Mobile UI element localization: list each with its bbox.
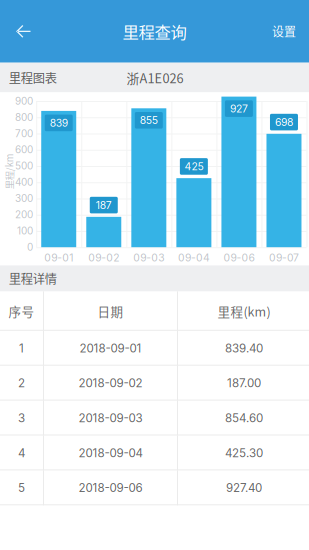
staticText: 5 <box>18 481 25 495</box>
staticText: 187 <box>96 199 112 211</box>
staticText: 里程(km) <box>217 302 270 320</box>
staticText: 600 <box>15 144 33 156</box>
staticText: 里程详情 <box>9 269 57 287</box>
staticText: 927 <box>230 102 248 115</box>
staticText: 2018-09-02 <box>78 376 142 390</box>
staticText: 里程/km <box>0 164 27 178</box>
staticText: 425 <box>184 160 203 173</box>
staticText: 698 <box>275 116 293 128</box>
staticText: 0 <box>27 241 33 253</box>
staticText: 里程查询 <box>122 19 186 43</box>
staticText: 09-02 <box>88 251 119 264</box>
staticText: 浙A1E026 <box>126 68 183 87</box>
staticText: 500 <box>15 160 33 172</box>
staticText: 09-04 <box>178 251 210 264</box>
staticText: 839.40 <box>225 341 263 355</box>
button[interactable]: 设置 <box>259 6 309 56</box>
staticText: 09-03 <box>133 251 164 264</box>
staticText: 700 <box>15 127 33 139</box>
staticText: 900 <box>15 95 33 107</box>
staticText: 300 <box>15 192 33 204</box>
staticText: 1 <box>19 341 24 355</box>
staticText: 839 <box>50 117 68 129</box>
staticText: 日期 <box>97 302 123 320</box>
staticText: 2018-09-04 <box>78 446 142 460</box>
staticText: 3 <box>18 411 25 425</box>
staticText: 100 <box>17 225 33 237</box>
staticText: 927.40 <box>226 481 262 495</box>
staticText: 09-01 <box>44 251 73 264</box>
staticText: 4 <box>18 446 25 460</box>
staticText: 2018-09-01 <box>79 341 141 355</box>
staticText: 200 <box>15 209 33 221</box>
staticText: 里程图表 <box>9 69 57 86</box>
staticText: 800 <box>15 111 33 123</box>
staticText: 09-07 <box>269 251 299 264</box>
staticText: 2018-09-06 <box>78 481 142 495</box>
staticText: 序号 <box>8 302 34 320</box>
staticText: 2018-09-03 <box>78 411 142 425</box>
staticText: 855 <box>140 114 158 127</box>
staticText: 854.60 <box>225 411 263 425</box>
staticText: 2 <box>18 376 25 390</box>
staticText: 设置 <box>272 23 296 40</box>
staticText: 09-06 <box>223 251 254 264</box>
staticText: 187.00 <box>227 376 261 390</box>
staticText: 425.30 <box>225 446 263 460</box>
button[interactable]: Back <box>0 6 47 56</box>
staticText: 400 <box>15 176 33 188</box>
